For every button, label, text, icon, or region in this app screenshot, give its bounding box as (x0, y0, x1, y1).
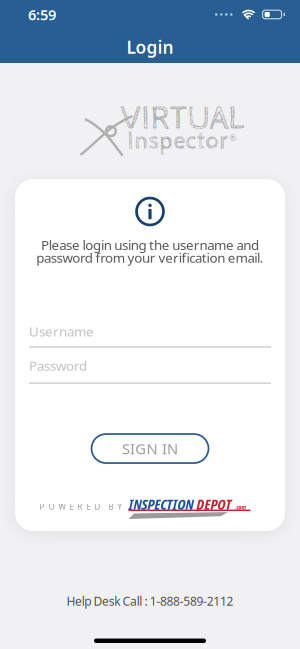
staticText: INSPECTION (128, 494, 193, 514)
staticText: .com (234, 502, 245, 512)
button[interactable]: SIGN IN (91, 434, 208, 463)
staticText: Password (29, 357, 87, 374)
button[interactable]: Help Desk Call : 1-888-589-2112 (66, 593, 233, 609)
staticText: Help Desk Call : 1-888-589-2112 (66, 593, 233, 609)
staticText: DEPOT (196, 494, 231, 514)
staticText: VIRTUAL (120, 99, 244, 138)
staticText: Login (126, 35, 173, 58)
staticText: SIGN IN (122, 439, 178, 458)
staticText: Username (29, 322, 94, 340)
staticText: ® (229, 130, 237, 145)
button[interactable]: Username (15, 322, 285, 348)
staticText: Inspector (127, 127, 228, 156)
button[interactable]: Password (15, 357, 285, 384)
staticText: P O W E R E D B Y (39, 501, 122, 512)
staticText: Please login using the username and (41, 236, 259, 254)
staticText: 6:59 (28, 5, 56, 24)
staticText: password from your verification email. (36, 249, 264, 266)
